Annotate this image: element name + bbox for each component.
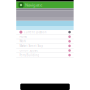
button[interactable]: App — [18, 2, 23, 8]
staticText: Market Street Stop — [19, 44, 43, 48]
staticText: Union Square — [19, 49, 38, 52]
staticText: Navigate — [25, 2, 42, 8]
button[interactable]: Ferry Building — [16, 53, 74, 58]
staticText: Current Location — [24, 30, 47, 34]
button[interactable]: Work — [16, 39, 74, 44]
staticText: Work — [19, 39, 25, 43]
button[interactable]: Market Street Stop — [16, 44, 74, 48]
button[interactable]: Union Square — [16, 48, 74, 53]
button[interactable]: Home — [16, 35, 74, 39]
staticText: Ferry Building — [19, 53, 39, 57]
button[interactable]: Current Location — [16, 30, 74, 35]
staticText: Home — [19, 35, 27, 38]
